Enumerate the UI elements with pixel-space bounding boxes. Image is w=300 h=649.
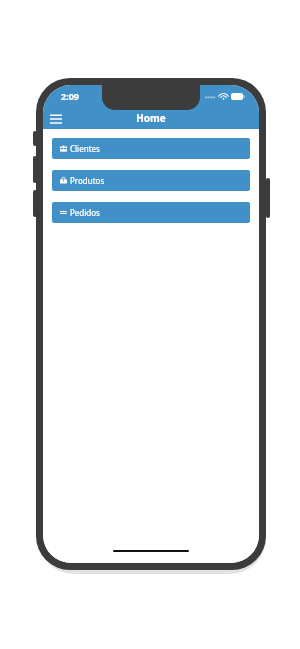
- staticText: Pedidos: [70, 207, 100, 218]
- staticText: 2:09: [61, 90, 79, 102]
- button[interactable]: Clientes: [52, 138, 250, 159]
- button[interactable]: Pedidos: [52, 202, 250, 223]
- staticText: Clientes: [70, 143, 100, 154]
- staticText: Home: [136, 111, 166, 125]
- button[interactable]: Open navigation menu: [43, 107, 69, 129]
- button[interactable]: Produtos: [52, 170, 250, 191]
- staticText: Produtos: [70, 175, 105, 186]
